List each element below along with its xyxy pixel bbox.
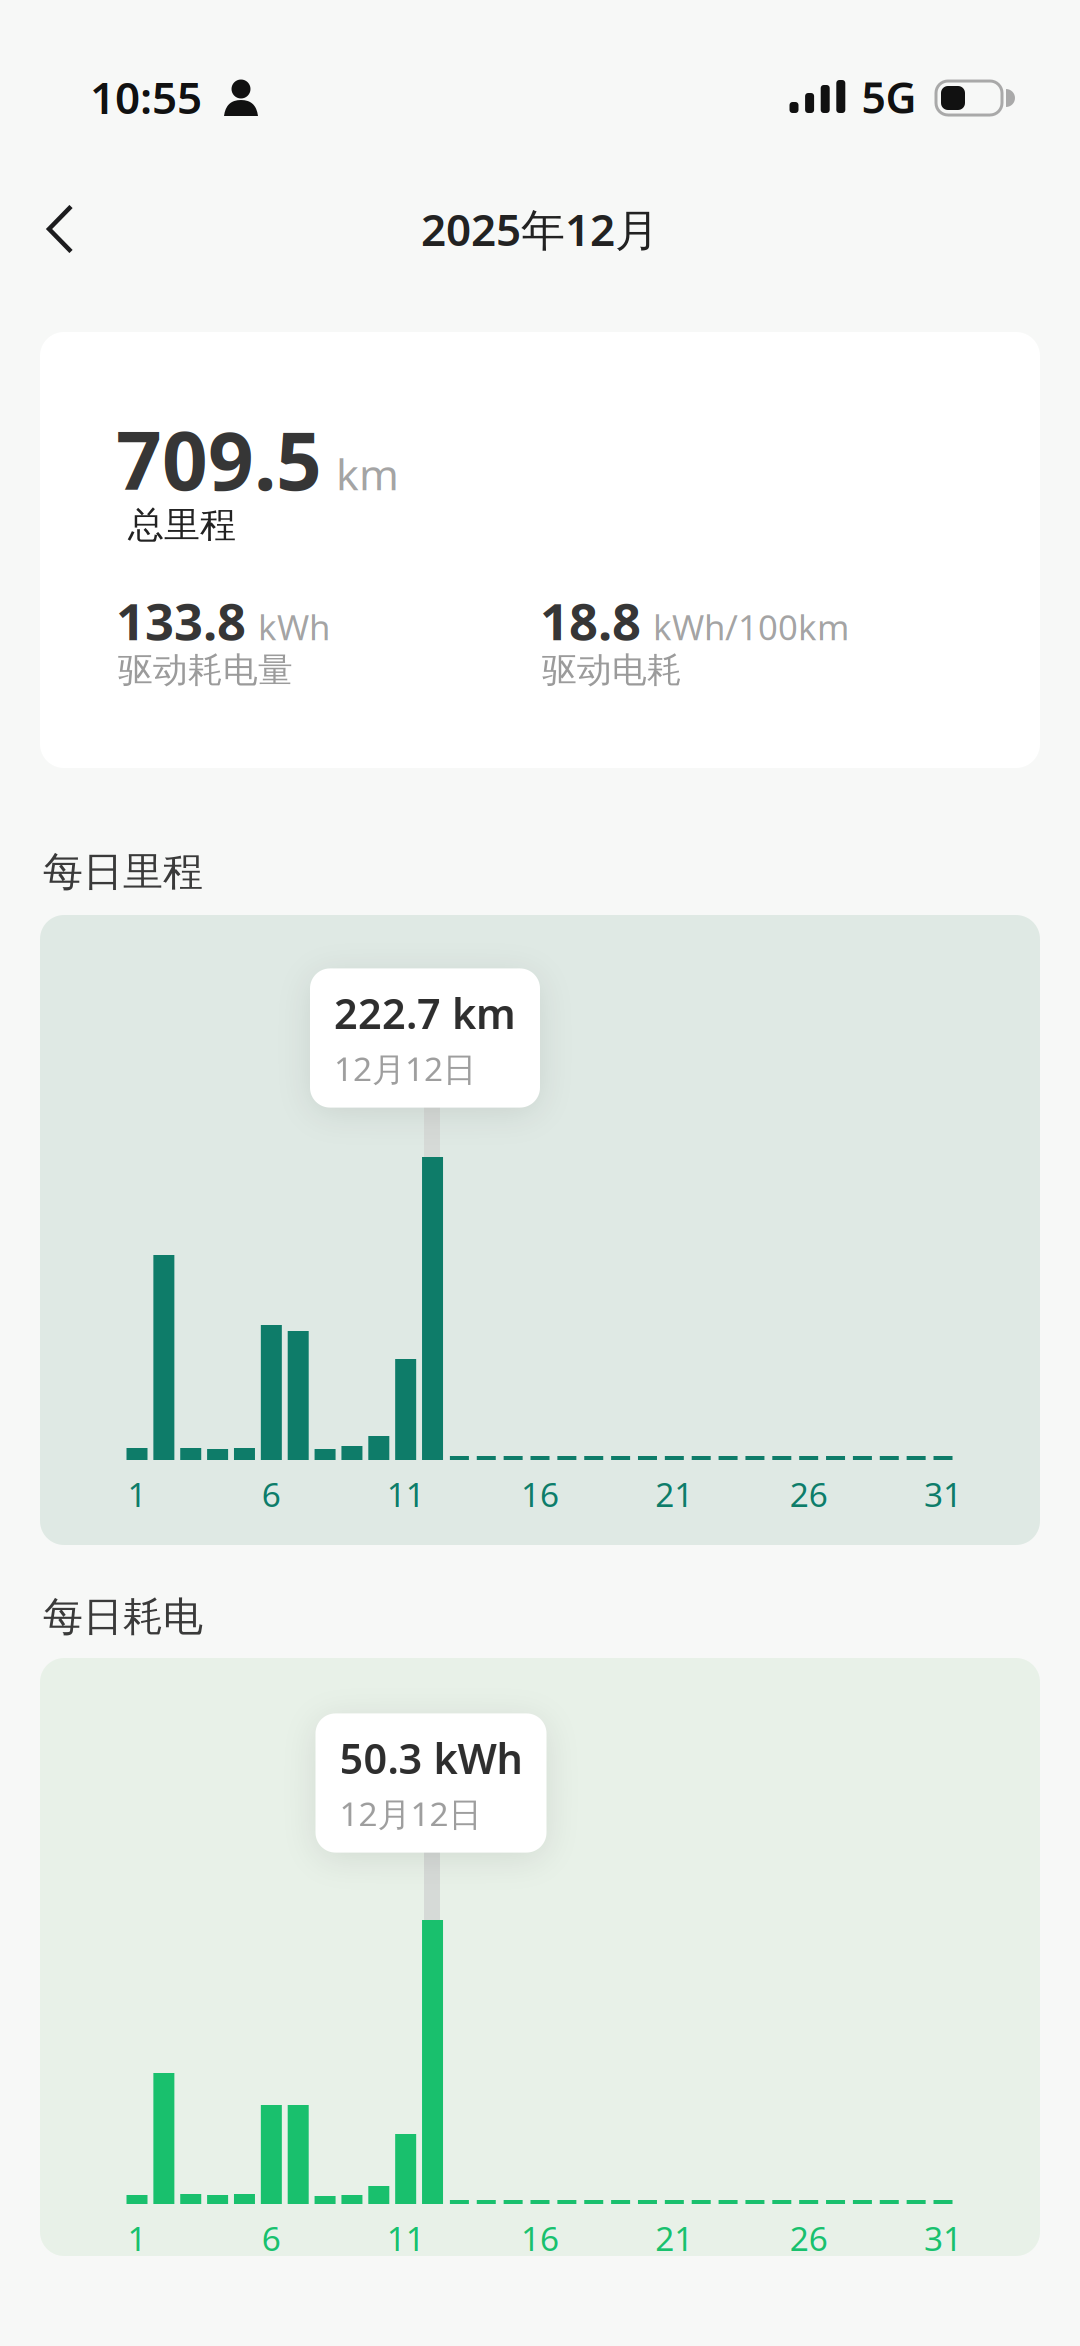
staticText: 10:55 [90,68,202,126]
staticText: 21 [655,2216,693,2260]
staticText: 16 [521,1472,559,1516]
staticText: 驱动耗电量 [118,649,293,692]
staticText: 26 [790,1472,828,1516]
staticText: 31 [924,2216,962,2260]
staticText: 11 [387,1472,425,1516]
staticText: 6 [262,1472,281,1516]
staticText: 2025年12月 [421,200,659,258]
staticText: 133.8 [116,587,246,654]
staticText: km [336,445,399,502]
staticText: 709.5 [116,406,322,512]
staticText: 每日耗电 [43,1592,203,1641]
staticText: 每日里程 [43,847,203,896]
button[interactable] [25,188,95,269]
staticText: 6 [262,2216,281,2260]
staticText: 18.8 [540,587,641,654]
staticText: 31 [924,1472,962,1516]
staticText: kWh/100km [653,604,849,650]
staticText: 1 [127,1472,146,1516]
staticText: 12月12日 [339,1791,481,1836]
staticText: 222.7 km [334,985,516,1040]
staticText: 5G [861,69,916,125]
staticText: 12月12日 [334,1046,476,1091]
staticText: 50.3 kWh [339,1730,522,1785]
staticText: 总里程 [128,503,236,547]
staticText: kWh [258,604,330,650]
staticText: 1 [127,2216,146,2260]
staticText: 16 [521,2216,559,2260]
staticText: 11 [387,2216,425,2260]
staticText: 驱动电耗 [542,649,682,692]
staticText: 21 [655,1472,693,1516]
staticText: 26 [790,2216,828,2260]
